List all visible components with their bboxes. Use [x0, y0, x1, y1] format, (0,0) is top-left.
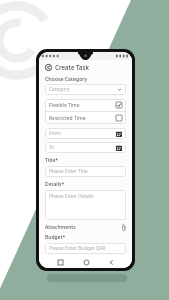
- button[interactable]: Please Enter Budget QAR: [45, 243, 126, 254]
- other: Pick date: [116, 131, 122, 137]
- staticText: Category: [49, 86, 70, 93]
- staticText: To: [49, 144, 55, 151]
- staticText: Create Task: [55, 63, 90, 71]
- button[interactable]: Please Enter Details: [45, 190, 126, 220]
- staticText: Attachments: [45, 224, 76, 231]
- button[interactable]: Recents: [55, 257, 65, 267]
- staticText: Budget*: [45, 234, 66, 241]
- staticText: Flexible Time: [49, 102, 80, 109]
- staticText: Choose Category: [45, 75, 88, 82]
- staticText: Details*: [45, 181, 65, 188]
- button[interactable]: Category: [45, 84, 126, 95]
- button[interactable]: Back: [44, 63, 52, 71]
- button[interactable]: Back: [106, 257, 116, 267]
- staticText: Please Enter Budget QAR: [49, 245, 106, 252]
- button[interactable]: Please Enter Title: [45, 166, 126, 177]
- staticText: Title*: [45, 157, 59, 164]
- button[interactable]: To: [45, 142, 126, 153]
- other: Pick date: [116, 145, 122, 151]
- button[interactable]: Restricted Time: [45, 112, 126, 124]
- staticText: Restricted Time: [49, 115, 86, 122]
- button[interactable]: Attachments: [45, 224, 126, 231]
- button[interactable]: Flexible Time: [45, 99, 126, 111]
- staticText: Please Enter Title: [49, 168, 88, 175]
- other: Attach file: [122, 224, 126, 231]
- staticText: Please Enter Details: [49, 193, 94, 200]
- staticText: From: [49, 130, 61, 137]
- button[interactable]: Home: [81, 257, 91, 267]
- button[interactable]: From: [45, 128, 126, 139]
